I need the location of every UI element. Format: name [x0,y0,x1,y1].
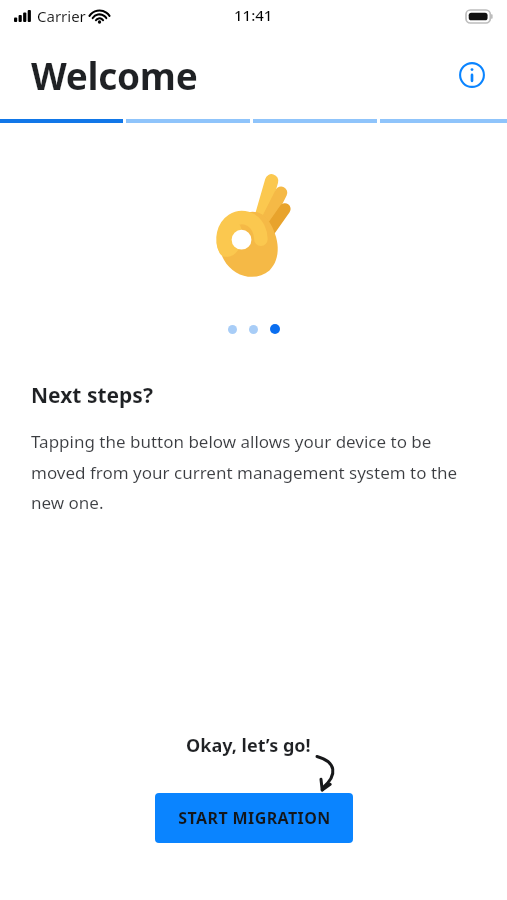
staticText: 11:41 [234,5,273,25]
staticText: Carrier [37,6,86,26]
button[interactable]: Information [458,61,486,89]
staticText: Okay, let’s go! [186,733,311,758]
staticText: Welcome [31,50,198,100]
staticText: Next steps? [31,381,153,410]
staticText: Tapping the button below allows your dev… [31,430,476,514]
button[interactable] [228,325,237,334]
button[interactable] [249,325,258,334]
button[interactable] [270,324,280,334]
staticText: START MIGRATION [178,807,331,829]
button[interactable]: START MIGRATION [155,793,353,843]
